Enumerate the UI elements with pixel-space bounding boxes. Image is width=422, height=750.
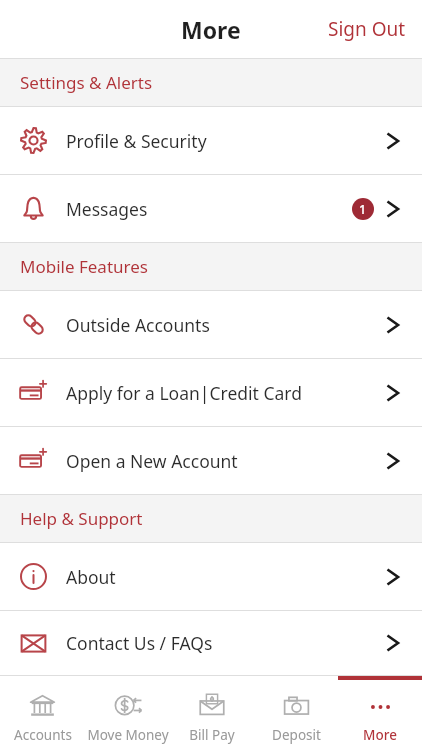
staticText: Settings & Alerts (20, 71, 153, 94)
staticText: More (181, 14, 241, 45)
other: Accounts (29, 693, 56, 720)
button[interactable]: More (338, 676, 422, 750)
staticText: About (66, 565, 386, 589)
staticText: Apply for a Loan|Credit Card (66, 381, 386, 405)
button[interactable]: Messages (0, 175, 422, 242)
staticText: Outside Accounts (66, 313, 386, 337)
button[interactable]: Apply for a Loan|Credit Card (0, 359, 422, 426)
button[interactable]: Move Money (85, 676, 170, 750)
staticText: Mobile Features (20, 255, 148, 278)
button[interactable]: Outside Accounts (0, 291, 422, 358)
button[interactable]: Profile & Security (0, 107, 422, 174)
other: Deposit (283, 693, 310, 720)
button[interactable]: About (0, 543, 422, 610)
button[interactable]: Contact Us / FAQs (0, 611, 422, 675)
staticText: Contact Us / FAQs (66, 631, 386, 655)
other: More (367, 693, 394, 720)
staticText: Bill Pay (189, 726, 235, 744)
button[interactable]: Open a New Account (0, 427, 422, 494)
staticText: More (363, 726, 397, 744)
staticText: Move Money (87, 726, 169, 744)
staticText: Profile & Security (66, 129, 386, 153)
button[interactable]: Sign Out (312, 6, 422, 52)
other: Bill Pay (198, 692, 226, 720)
staticText: Sign Out (328, 16, 406, 42)
other: Move Money (114, 692, 142, 720)
staticText: 1 (359, 201, 367, 218)
button[interactable]: Accounts (0, 676, 85, 750)
staticText: Messages (66, 197, 352, 221)
button[interactable]: Deposit (254, 676, 338, 750)
staticText: Help & Support (20, 507, 143, 530)
staticText: Deposit (272, 726, 321, 744)
button[interactable]: Bill Pay (170, 676, 254, 750)
staticText: Accounts (14, 726, 72, 744)
staticText: Open a New Account (66, 449, 386, 473)
